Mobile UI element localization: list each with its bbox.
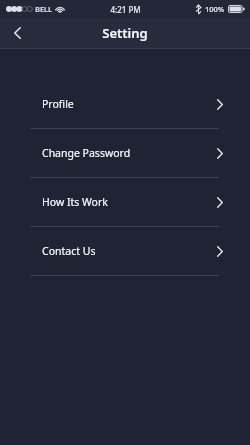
staticText: BELL (35, 4, 53, 14)
staticText: Profile (42, 97, 74, 111)
button[interactable]: Contact Us (0, 227, 250, 276)
staticText: 4:21 PM (110, 4, 141, 15)
staticText: Change Password (42, 146, 131, 160)
button[interactable]: How Its Work (0, 178, 250, 227)
staticText: Contact Us (42, 244, 96, 258)
button[interactable]: Profile (0, 80, 250, 129)
button[interactable]: Back (0, 18, 34, 48)
staticText: How Its Work (42, 195, 108, 209)
staticText: Setting (102, 24, 148, 42)
button[interactable]: Change Password (0, 129, 250, 178)
staticText: 100% (205, 4, 225, 14)
